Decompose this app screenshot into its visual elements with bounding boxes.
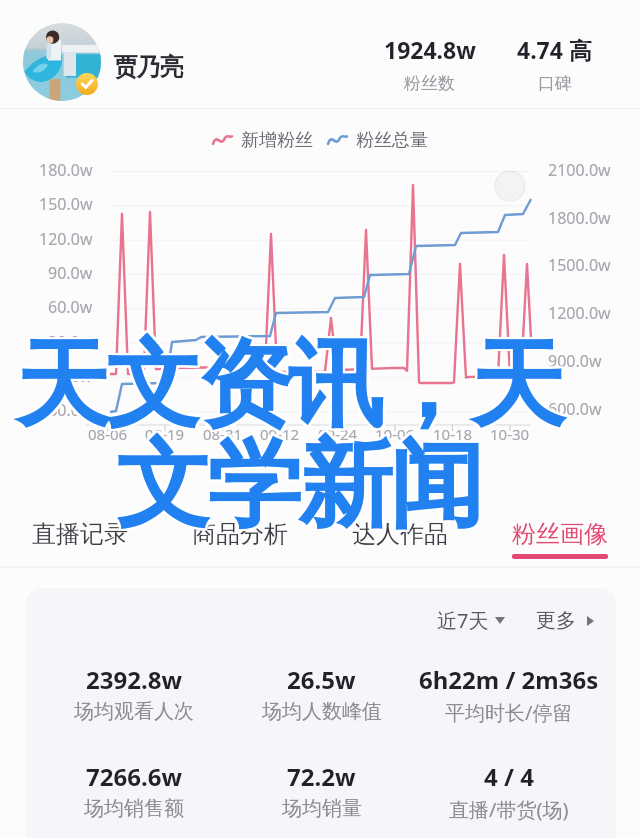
staticText: 1924.8w	[384, 34, 476, 65]
staticText: 10-30	[490, 424, 530, 444]
staticText: 7266.6w	[86, 760, 182, 793]
staticText: 场均销量	[282, 796, 362, 821]
staticText: 2392.8w	[86, 663, 182, 696]
staticText: 6h22m / 2m36s	[419, 663, 599, 696]
staticText: 600.0w	[548, 398, 602, 420]
button[interactable]: 7266.6w	[40, 760, 228, 821]
staticText: 09-24	[318, 424, 358, 444]
staticText: 900.0w	[548, 350, 602, 372]
staticText: 贾乃亮	[114, 52, 183, 82]
staticText: 场均销售额	[84, 796, 184, 821]
staticText: 150.0w	[39, 193, 93, 215]
button[interactable]: 1924.8w	[352, 0, 507, 94]
staticText: 天文资讯，天	[19, 324, 565, 444]
button[interactable]: Profile avatar	[23, 23, 101, 101]
button[interactable]: 2392.8w	[40, 663, 228, 724]
staticText: 直播记录	[32, 519, 128, 549]
staticText: 文学新闻	[116, 426, 480, 546]
staticText: 26.5w	[287, 663, 356, 696]
staticText: 文学新闻	[116, 424, 480, 544]
staticText: 口碑	[538, 73, 572, 94]
staticText: 08-06	[88, 424, 128, 444]
button[interactable]: 直播记录	[0, 500, 160, 570]
staticText: 商品分析	[192, 519, 288, 549]
staticText: 08-19	[145, 424, 185, 444]
staticText: 文学新闻	[118, 428, 482, 548]
staticText: 30.0w	[48, 331, 93, 353]
staticText: 文学新闻	[120, 428, 484, 548]
staticText: 直播/带货(场)	[449, 796, 569, 823]
staticText: 场均观看人次	[74, 699, 194, 724]
staticText: 10-18	[433, 424, 473, 444]
staticText: 文学新闻	[118, 426, 482, 546]
staticText: 4 / 4	[484, 760, 534, 793]
staticText: 近7天	[437, 607, 489, 634]
staticText: 60.0w	[48, 296, 93, 318]
staticText: 天文资讯，天	[17, 324, 563, 444]
staticText: 天文资讯，天	[17, 328, 563, 448]
button[interactable]: 粉丝画像	[480, 500, 640, 570]
staticText: 4.74 高	[517, 34, 592, 65]
staticText: 平均时长/停留	[445, 699, 573, 726]
button[interactable]: 6h22m / 2m36s	[415, 663, 602, 726]
button[interactable]: 新增粉丝	[213, 129, 313, 152]
staticText: 天文资讯，天	[15, 328, 561, 448]
button[interactable]: 72.2w	[228, 760, 415, 821]
button[interactable]: 近7天	[433, 603, 509, 638]
button[interactable]: 4.74 高	[493, 0, 616, 94]
staticText: 文学新闻	[116, 428, 480, 548]
staticText: 10-06	[375, 424, 415, 444]
staticText: 90.0w	[48, 262, 93, 284]
staticText: 更多	[536, 608, 576, 633]
staticText: 1200.0w	[548, 302, 611, 324]
staticText: 文学新闻	[118, 424, 482, 544]
staticText: 2100.0w	[548, 159, 611, 181]
staticText: 场均人数峰值	[262, 699, 382, 724]
staticText: 文学新闻	[120, 426, 484, 546]
staticText: 粉丝总量	[356, 129, 428, 152]
staticText: 1500.0w	[548, 254, 611, 276]
button[interactable]: 26.5w	[228, 663, 415, 724]
staticText: 天文资讯，天	[19, 326, 565, 446]
staticText: 新增粉丝	[241, 129, 313, 152]
staticText: 粉丝数	[404, 73, 455, 94]
staticText: 粉丝画像	[512, 519, 608, 549]
staticText: 72.2w	[287, 760, 356, 793]
staticText: 天文资讯，天	[15, 326, 561, 446]
button[interactable]: 粉丝总量	[328, 129, 428, 152]
staticText: 1800.0w	[548, 207, 611, 229]
button[interactable]: 达人作品	[320, 500, 480, 570]
button[interactable]: 4 / 4	[415, 760, 602, 823]
staticText: 0.0w	[57, 365, 93, 387]
staticText: 文学新闻	[120, 424, 484, 544]
staticText: 180.0w	[39, 159, 93, 181]
staticText: -30.0w	[43, 399, 93, 421]
staticText: 达人作品	[352, 519, 448, 549]
staticText: 天文资讯，天	[19, 328, 565, 448]
button[interactable]: 商品分析	[160, 500, 320, 570]
staticText: 120.0w	[39, 228, 93, 250]
staticText: 天文资讯，天	[15, 324, 561, 444]
staticText: 09-12	[260, 424, 300, 444]
button[interactable]: 更多	[532, 604, 598, 637]
staticText: 08-31	[203, 424, 243, 444]
staticText: 天文资讯，天	[17, 326, 563, 446]
